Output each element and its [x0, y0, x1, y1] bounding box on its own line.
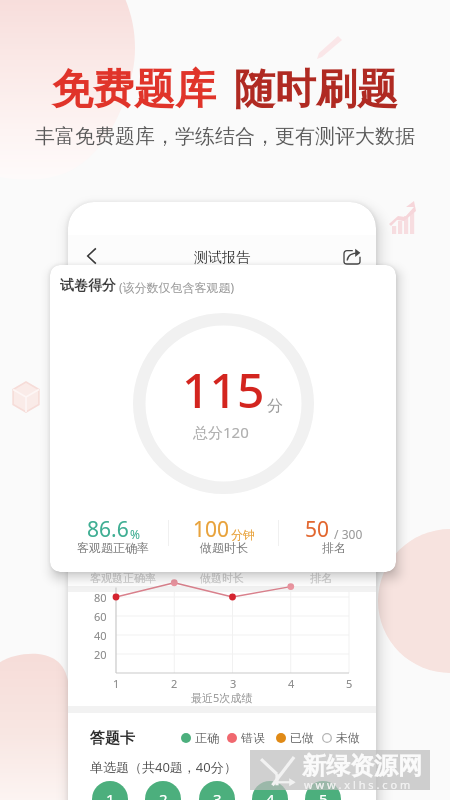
button[interactable]: 2	[145, 781, 181, 800]
staticText: 分	[267, 396, 283, 416]
staticText: 20	[94, 647, 107, 662]
staticText: 答题卡	[90, 729, 135, 748]
staticText: / 300	[331, 526, 363, 542]
button[interactable]: 5	[305, 781, 341, 800]
staticText: 做题时长	[200, 540, 248, 555]
staticText: 做题时长	[200, 571, 244, 585]
staticText: 1	[106, 789, 115, 800]
staticText: 100	[193, 515, 230, 544]
staticText: 客观题正确率	[90, 571, 156, 585]
staticText: 免费题库	[52, 64, 216, 116]
staticText: 单选题（共40题，40分）	[90, 758, 237, 776]
staticText: 总分120	[193, 422, 249, 442]
button[interactable]: 4	[252, 781, 288, 800]
staticText: 115	[182, 357, 265, 422]
staticText: 最近5次成绩	[191, 690, 253, 705]
staticText: 1	[113, 676, 120, 691]
staticText: 4	[266, 789, 275, 800]
staticText: 已做	[290, 730, 314, 745]
staticText: 60	[94, 609, 107, 624]
staticText: 正确	[195, 730, 219, 745]
button[interactable]: Back	[82, 245, 104, 267]
staticText: 客观题正确率	[77, 540, 149, 555]
staticText: 测试报告	[194, 249, 250, 267]
staticText: 4	[288, 676, 295, 691]
staticText: 试卷得分	[60, 277, 116, 295]
staticText: 86.6	[87, 515, 129, 544]
staticText: 排名	[310, 571, 332, 585]
staticText: 40	[94, 628, 107, 643]
staticText: 2	[171, 676, 178, 691]
staticText: 5	[319, 789, 328, 800]
button[interactable]: Share	[344, 248, 360, 264]
staticText: 错误	[241, 730, 265, 745]
staticText: (该分数仅包含客观题)	[119, 279, 235, 295]
staticText: 未做	[336, 730, 360, 745]
staticText: 5	[346, 676, 353, 691]
staticText: 丰富免费题库，学练结合，更有测评大数据	[35, 124, 415, 149]
staticText: 新绿资源网	[302, 751, 422, 781]
staticText: 50	[305, 515, 330, 544]
staticText: 3	[230, 676, 237, 691]
staticText: w w w . x l h s . c o m	[304, 777, 411, 792]
staticText: %	[130, 526, 140, 542]
staticText: 80	[94, 590, 107, 605]
staticText: 随时刷题	[234, 64, 398, 116]
button[interactable]: 3	[199, 781, 235, 800]
staticText: 2	[159, 789, 168, 800]
staticText: 分钟	[231, 527, 255, 542]
staticText: 排名	[322, 540, 346, 555]
button[interactable]: 1	[92, 781, 128, 800]
staticText: 3	[213, 789, 222, 800]
